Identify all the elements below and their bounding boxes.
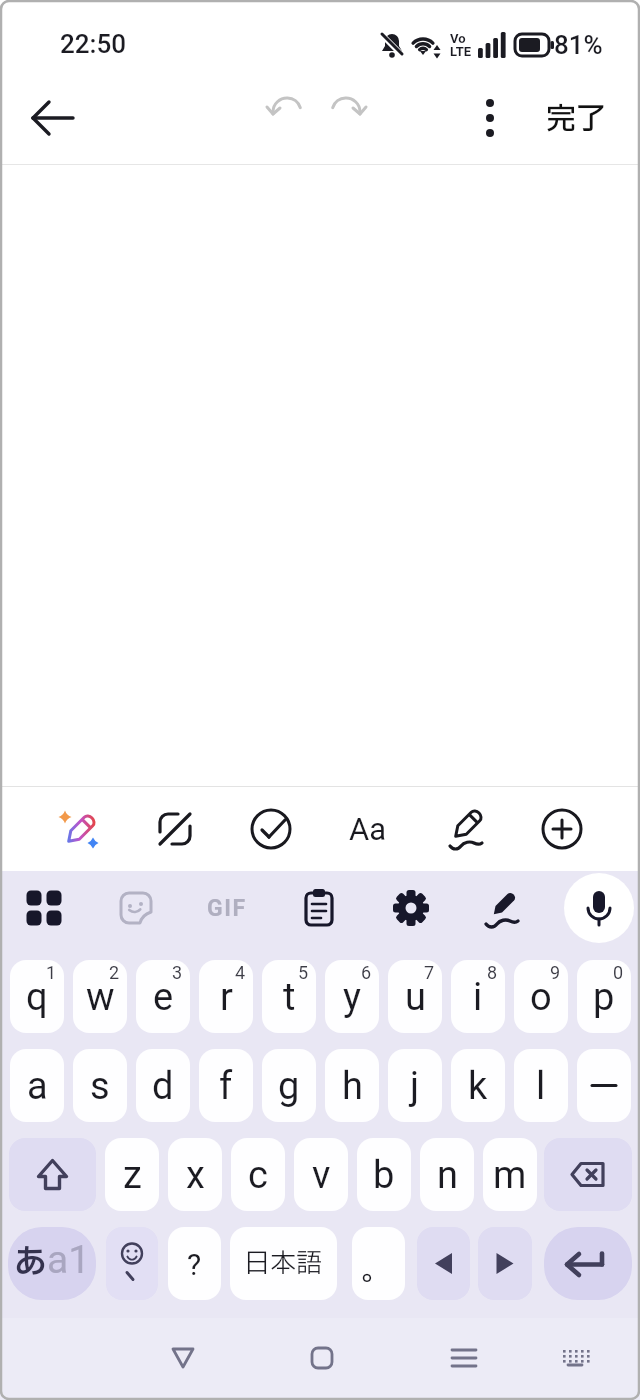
staticText: a xyxy=(27,1064,48,1109)
button[interactable] xyxy=(551,1334,599,1382)
button[interactable] xyxy=(534,801,590,857)
button[interactable] xyxy=(385,882,437,934)
staticText: w xyxy=(86,975,115,1020)
staticText: ? xyxy=(187,1247,202,1282)
button[interactable]: GIF xyxy=(197,882,257,934)
staticText: 1 xyxy=(46,962,57,983)
button[interactable]: s xyxy=(73,1049,127,1122)
staticText: e xyxy=(153,975,174,1020)
staticText: g xyxy=(278,1064,300,1109)
button[interactable]: b xyxy=(357,1138,411,1211)
button[interactable]: i xyxy=(451,960,505,1033)
button[interactable]: w xyxy=(73,960,127,1033)
staticText: o xyxy=(530,975,552,1020)
staticText: GIF xyxy=(207,895,247,922)
button[interactable]: Aa xyxy=(333,801,403,857)
staticText: 完了 xyxy=(546,97,606,141)
button[interactable]: c xyxy=(231,1138,285,1211)
button[interactable]: p xyxy=(577,960,631,1033)
button[interactable] xyxy=(50,801,106,857)
staticText: Vo LTE xyxy=(450,31,472,59)
staticText: 8 xyxy=(487,962,498,983)
staticText: d xyxy=(152,1064,174,1109)
staticText: y xyxy=(343,975,361,1020)
staticText: 7 xyxy=(424,962,435,983)
button[interactable]: l xyxy=(514,1049,568,1122)
staticText: i xyxy=(473,975,483,1020)
button[interactable]: k xyxy=(451,1049,505,1122)
button[interactable]: x xyxy=(168,1138,222,1211)
button[interactable] xyxy=(147,801,203,857)
button[interactable]: v xyxy=(294,1138,348,1211)
button[interactable]: j xyxy=(388,1049,442,1122)
staticText: p xyxy=(593,975,615,1020)
button[interactable] xyxy=(293,882,345,934)
button[interactable] xyxy=(437,801,493,857)
button[interactable]: m xyxy=(483,1138,537,1211)
button[interactable]: 。 xyxy=(352,1227,405,1300)
staticText: 。 xyxy=(361,1249,391,1292)
staticText: 6 xyxy=(361,962,372,983)
button[interactable]: d xyxy=(136,1049,190,1122)
button[interactable] xyxy=(544,1138,632,1211)
staticText: n xyxy=(437,1153,458,1198)
staticText: 4 xyxy=(235,962,246,983)
staticText: u xyxy=(405,975,426,1020)
button[interactable]: q xyxy=(10,960,64,1033)
button[interactable]: g xyxy=(262,1049,316,1122)
button[interactable] xyxy=(564,873,634,943)
staticText: k xyxy=(468,1064,488,1109)
staticText: s xyxy=(90,1064,110,1109)
button[interactable] xyxy=(417,1227,470,1300)
button[interactable]: o xyxy=(514,960,568,1033)
staticText: 3 xyxy=(172,962,183,983)
staticText: l xyxy=(536,1064,546,1109)
button[interactable]: f xyxy=(199,1049,253,1122)
staticText: q xyxy=(26,975,48,1020)
staticText: z xyxy=(123,1153,142,1198)
button[interactable]: r xyxy=(199,960,253,1033)
staticText: h xyxy=(342,1064,363,1109)
staticText: 81% xyxy=(554,30,603,60)
button[interactable] xyxy=(25,90,81,146)
staticText: 0 xyxy=(613,962,624,983)
button[interactable] xyxy=(468,94,512,142)
button[interactable]: t xyxy=(262,960,316,1033)
staticText: m xyxy=(493,1153,527,1198)
staticText: t xyxy=(283,975,296,1020)
staticText: c xyxy=(248,1153,268,1198)
staticText: r xyxy=(220,975,233,1020)
button[interactable] xyxy=(159,1334,207,1382)
button[interactable]: y xyxy=(325,960,379,1033)
button[interactable] xyxy=(9,1138,96,1211)
button[interactable]: e xyxy=(136,960,190,1033)
staticText: あa1 xyxy=(14,1237,91,1288)
button[interactable] xyxy=(478,1227,532,1300)
button[interactable]: z xyxy=(105,1138,159,1211)
button[interactable] xyxy=(243,801,299,857)
staticText: Aa xyxy=(349,811,387,847)
button[interactable]: u xyxy=(388,960,442,1033)
button[interactable] xyxy=(544,1227,632,1300)
staticText: x xyxy=(186,1153,205,1198)
button[interactable] xyxy=(577,1049,631,1122)
staticText: 日本語 xyxy=(244,1244,323,1283)
button[interactable]: a xyxy=(10,1049,64,1122)
button[interactable]: あa1 xyxy=(8,1227,96,1300)
button[interactable] xyxy=(110,882,162,934)
button[interactable] xyxy=(322,94,370,142)
button[interactable] xyxy=(106,1227,158,1300)
button[interactable]: n xyxy=(420,1138,474,1211)
button[interactable] xyxy=(476,882,528,934)
button[interactable]: h xyxy=(325,1049,379,1122)
staticText: f xyxy=(219,1064,233,1109)
button[interactable]: ? xyxy=(168,1227,221,1300)
staticText: b xyxy=(373,1153,395,1198)
button[interactable] xyxy=(18,882,70,934)
button[interactable]: 日本語 xyxy=(230,1227,337,1300)
button[interactable] xyxy=(298,1334,346,1382)
staticText: 9 xyxy=(550,962,561,983)
button[interactable] xyxy=(440,1334,488,1382)
button[interactable]: 完了 xyxy=(536,97,616,141)
button[interactable] xyxy=(263,94,311,142)
